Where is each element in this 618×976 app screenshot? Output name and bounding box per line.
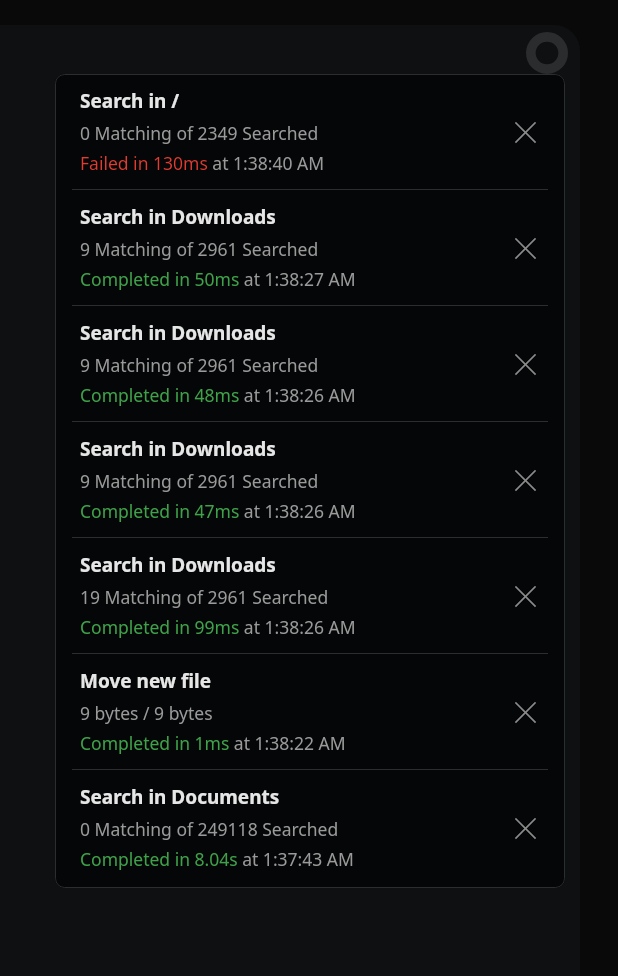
button[interactable]: Dismiss [503, 458, 547, 502]
button[interactable]: Search in / [55, 74, 565, 189]
button[interactable]: Dismiss [503, 342, 547, 386]
button[interactable]: Dismiss [503, 574, 547, 618]
button[interactable]: Dismiss [503, 806, 547, 850]
button[interactable]: Search in Downloads [55, 190, 565, 305]
staticText: Failed in 130ms at 1:38:40 AM [80, 151, 325, 175]
button[interactable]: Dismiss [503, 690, 547, 734]
other: Status indicator [525, 31, 569, 75]
staticText: Search in Downloads [80, 204, 276, 230]
staticText: 9 bytes / 9 bytes [80, 701, 213, 725]
button[interactable]: Move new file [55, 654, 565, 769]
button[interactable]: Dismiss [503, 226, 547, 270]
staticText: 9 Matching of 2961 Searched [80, 237, 319, 261]
staticText: 19 Matching of 2961 Searched [80, 585, 329, 609]
button[interactable]: Search in Downloads [55, 422, 565, 537]
staticText: Search in Downloads [80, 436, 276, 462]
button[interactable]: Search in Documents [55, 770, 565, 885]
button[interactable]: Search in Downloads [55, 538, 565, 653]
staticText: Search in / [80, 88, 180, 114]
staticText: Move new file [80, 668, 212, 694]
staticText: Search in Documents [80, 784, 280, 810]
button[interactable]: Dismiss [503, 110, 547, 154]
staticText: 0 Matching of 2349 Searched [80, 121, 319, 145]
staticText: Completed in 8.04s at 1:37:43 AM [80, 847, 354, 871]
staticText: Search in Downloads [80, 320, 276, 346]
staticText: Completed in 50ms at 1:38:27 AM [80, 267, 356, 291]
staticText: Completed in 47ms at 1:38:26 AM [80, 499, 356, 523]
staticText: 0 Matching of 249118 Searched [80, 817, 339, 841]
staticText: Search in Downloads [80, 552, 276, 578]
staticText: Completed in 99ms at 1:38:26 AM [80, 615, 356, 639]
staticText: Completed in 1ms at 1:38:22 AM [80, 731, 346, 755]
staticText: 9 Matching of 2961 Searched [80, 353, 319, 377]
staticText: 9 Matching of 2961 Searched [80, 469, 319, 493]
staticText: Completed in 48ms at 1:38:26 AM [80, 383, 356, 407]
button[interactable]: Search in Downloads [55, 306, 565, 421]
